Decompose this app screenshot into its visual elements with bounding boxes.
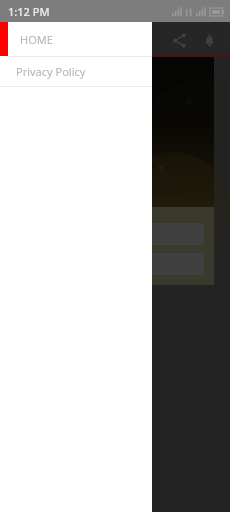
button[interactable]: Privacy Policy [0, 57, 152, 86]
button[interactable] [14, 253, 204, 275]
button[interactable]: Share [164, 25, 194, 55]
button[interactable] [14, 223, 204, 245]
button[interactable]: HOME [0, 22, 152, 56]
button[interactable]: Notifications [194, 25, 224, 55]
staticText: HOME [20, 32, 53, 47]
staticText: Privacy Policy [16, 64, 86, 79]
staticText: 1:12 PM [8, 4, 50, 19]
